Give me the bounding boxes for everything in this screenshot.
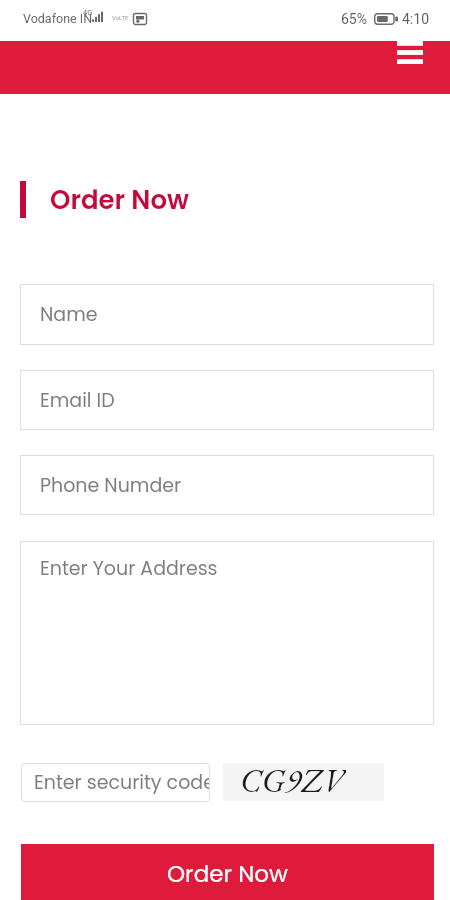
staticText: CG9ZV [240, 758, 346, 796]
button[interactable]: Enter security code [21, 763, 210, 802]
button[interactable]: Name [20, 284, 434, 345]
staticText: Order Now [50, 182, 189, 218]
staticText: 4G [83, 8, 93, 17]
button[interactable]: Enter Your Address [20, 541, 434, 725]
staticText: Enter security code [34, 769, 210, 796]
staticText: 65% [341, 11, 367, 27]
button[interactable]: Email ID [20, 370, 434, 430]
staticText: Order Now [167, 858, 288, 890]
staticText: Enter Your Address [40, 555, 218, 582]
button[interactable]: Open navigation menu [386, 29, 434, 75]
button[interactable]: Order Now [21, 844, 434, 900]
staticText: Email ID [40, 387, 115, 414]
staticText: Phone Numder [40, 472, 182, 499]
staticText: VoLTE [112, 14, 129, 21]
staticText: 4:10 [402, 11, 429, 27]
staticText: Vodafone IN [23, 11, 93, 26]
button[interactable]: Phone Numder [20, 455, 434, 515]
staticText: Name [40, 301, 98, 328]
